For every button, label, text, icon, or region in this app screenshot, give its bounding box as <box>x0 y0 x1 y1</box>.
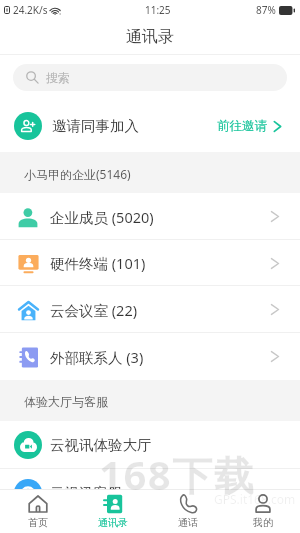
staticText: 168下载 <box>99 447 256 502</box>
button[interactable]: 我的 <box>225 490 300 533</box>
staticText: 云会议室 (22) <box>50 300 138 320</box>
button[interactable]: 搜索 <box>13 64 287 91</box>
staticText: 通讯录 <box>98 516 128 529</box>
staticText: 小马甲的企业(5146) <box>24 166 131 182</box>
button[interactable]: 通话 <box>150 490 225 533</box>
staticText: 通讯录 <box>126 27 174 47</box>
button[interactable]: 云视讯客服 <box>0 469 300 517</box>
button[interactable]: 云会议室 (22) <box>0 286 300 333</box>
button[interactable]: 外部联系人 (3) <box>0 333 300 380</box>
button[interactable]: 通讯录 <box>75 490 150 533</box>
staticText: 云视讯体验大厅 <box>50 436 152 454</box>
staticText: 搜索 <box>46 70 70 85</box>
button[interactable]: 企业成员 (5020) <box>0 193 300 240</box>
staticText: 我的 <box>253 516 273 529</box>
button[interactable]: 首页 <box>0 490 75 533</box>
staticText: 首页 <box>28 516 48 529</box>
staticText: 87% <box>256 3 276 17</box>
staticText: 外部联系人 (3) <box>50 347 144 367</box>
button[interactable]: 邀请同事加入 <box>0 91 300 152</box>
staticText: 邀请同事加入 <box>52 117 139 135</box>
button[interactable]: 云视讯体验大厅 <box>0 421 300 469</box>
staticText: 企业成员 (5020) <box>50 207 154 227</box>
staticText: 硬件终端 (101) <box>50 253 146 273</box>
staticText: 前往邀请 <box>217 118 267 134</box>
staticText: GPS.it168.com <box>214 491 296 507</box>
staticText: 通话 <box>178 516 198 529</box>
staticText: 24.2K/s <box>13 3 48 17</box>
button[interactable]: 硬件终端 (101) <box>0 240 300 286</box>
staticText: 云视讯客服 <box>50 484 123 502</box>
staticText: 体验大厅与客服 <box>24 394 108 409</box>
staticText: 11:25 <box>145 3 171 17</box>
